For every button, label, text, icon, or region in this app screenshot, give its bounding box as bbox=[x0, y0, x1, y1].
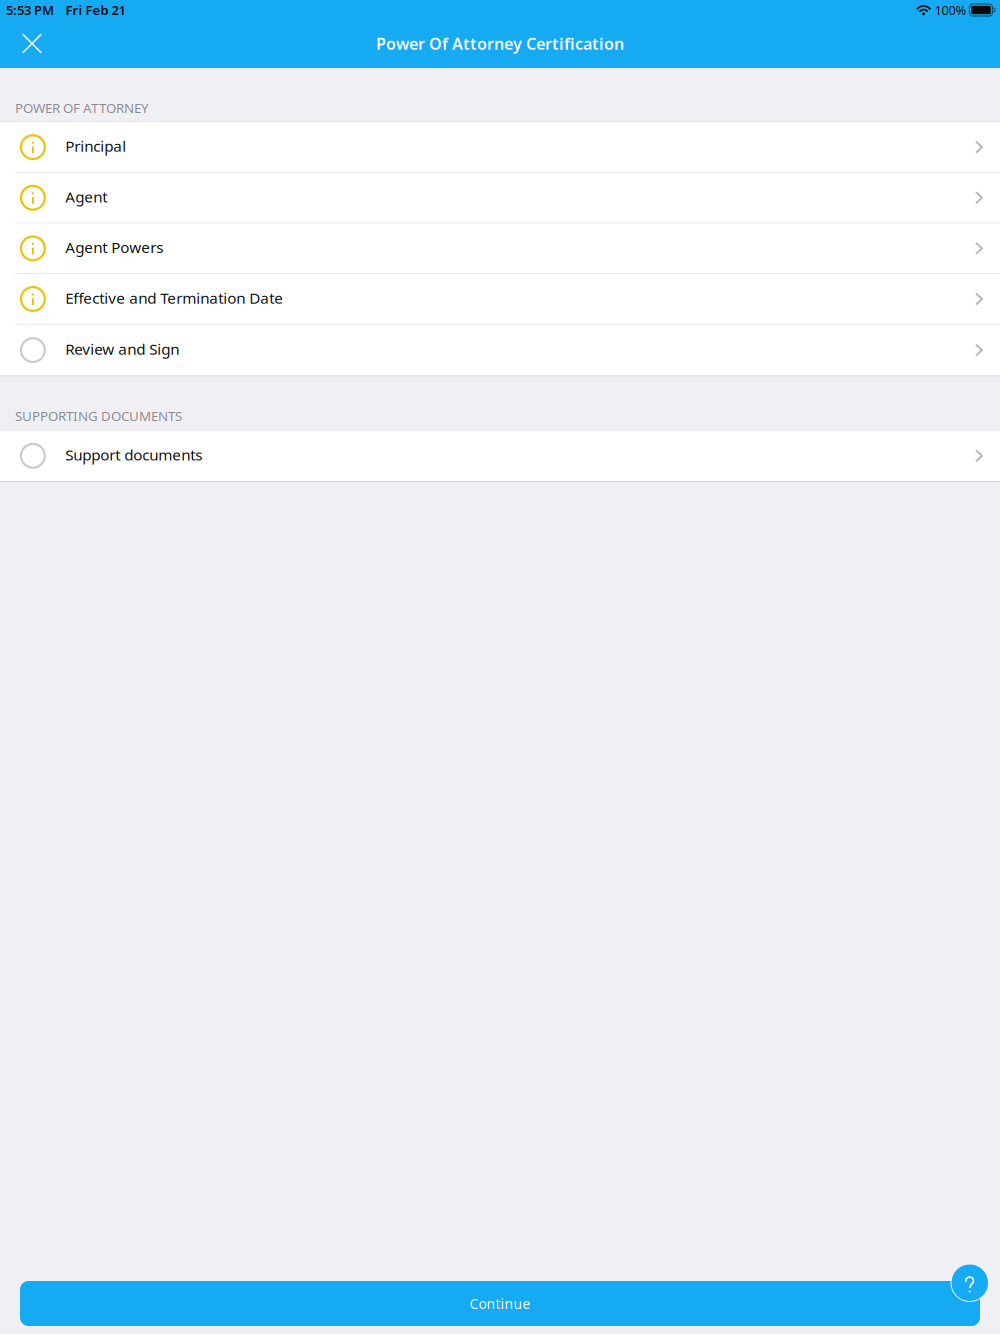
button[interactable]: Help bbox=[950, 1263, 989, 1302]
button[interactable]: Agent Powers bbox=[0, 223, 1000, 274]
button[interactable]: Principal bbox=[0, 122, 1000, 173]
staticText: Power Of Attorney Certification bbox=[376, 32, 624, 54]
staticText: Agent bbox=[65, 186, 107, 207]
staticText: SUPPORTING DOCUMENTS bbox=[15, 407, 182, 425]
staticText: Agent Powers bbox=[65, 237, 163, 257]
staticText: POWER OF ATTORNEY bbox=[15, 99, 149, 117]
button[interactable]: Support documents bbox=[0, 430, 1000, 481]
staticText: Support documents bbox=[65, 444, 202, 465]
staticText: Continue bbox=[469, 1294, 530, 1313]
button[interactable]: Effective and Termination Date bbox=[0, 274, 1000, 325]
staticText: Effective and Termination Date bbox=[65, 287, 283, 308]
staticText: 5:53 PM bbox=[6, 1, 54, 19]
button[interactable]: Review and Sign bbox=[0, 325, 1000, 375]
staticText: Principal bbox=[65, 136, 126, 156]
staticText: Review and Sign bbox=[65, 338, 179, 359]
button[interactable]: Agent bbox=[0, 173, 1000, 223]
staticText: 100% bbox=[934, 1, 966, 19]
button[interactable]: Continue bbox=[20, 1281, 980, 1326]
button[interactable]: Close bbox=[9, 20, 55, 66]
staticText: Fri Feb 21 bbox=[65, 1, 125, 19]
